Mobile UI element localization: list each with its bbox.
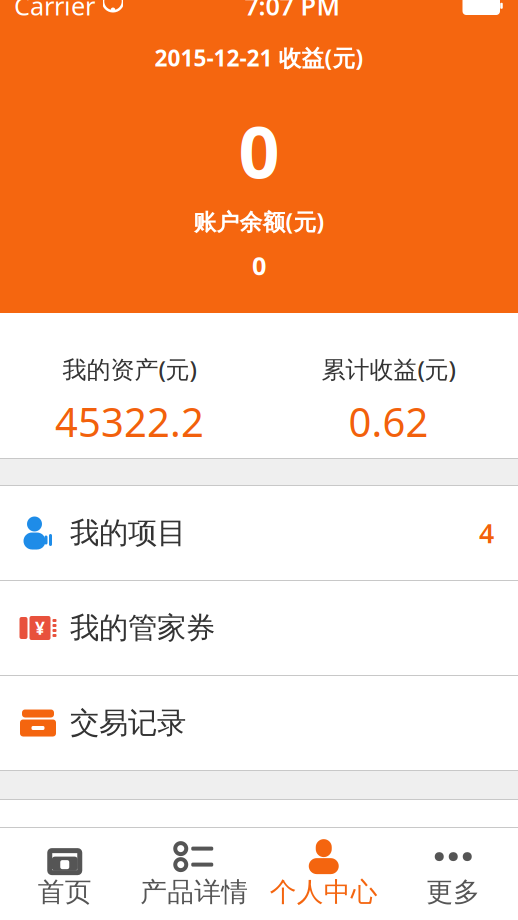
staticText: 首页 — [38, 876, 92, 908]
staticText: 2015-12-21 收益(元) — [154, 43, 363, 73]
button[interactable]: 我的项目 — [0, 486, 518, 580]
staticText: 我的资产(元) — [62, 353, 196, 385]
staticText: 0 — [238, 103, 279, 198]
button[interactable]: 产品详情 — [129, 828, 259, 920]
button[interactable]: 交易记录 — [0, 676, 518, 770]
staticText: 账户余额(元) — [193, 206, 324, 237]
staticText: 我的管家券 — [70, 610, 215, 646]
staticText: 4 — [479, 515, 494, 551]
staticText: 累计收益(元) — [321, 353, 455, 385]
staticText: 我的项目 — [70, 515, 186, 551]
staticText: 45322.2 — [55, 395, 204, 448]
staticText: 7:07 PM — [244, 0, 340, 23]
button[interactable]: 首页 — [0, 828, 129, 920]
staticText: ¥ — [35, 616, 45, 639]
staticText: Carrier — [14, 0, 95, 23]
staticText: 0 — [252, 249, 266, 282]
button[interactable]: ¥ — [0, 581, 518, 675]
staticText: 产品详情 — [140, 876, 248, 908]
staticText: 更多 — [426, 876, 480, 908]
button[interactable]: 个人中心 — [259, 828, 388, 920]
staticText: 交易记录 — [70, 705, 186, 741]
staticText: 个人中心 — [270, 876, 378, 908]
staticText: 0.62 — [348, 395, 428, 448]
button[interactable]: 更多 — [388, 828, 518, 920]
